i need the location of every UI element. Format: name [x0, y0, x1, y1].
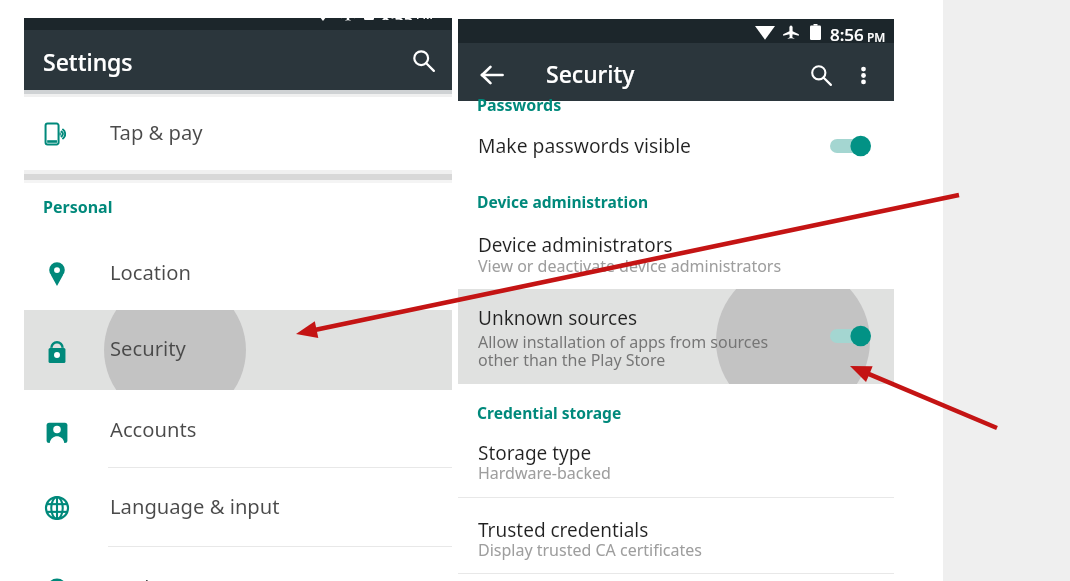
button[interactable]: Unknown sources: [458, 289, 894, 384]
staticText: 8:56: [830, 23, 864, 43]
staticText: Security: [110, 334, 186, 362]
staticText: 8:55: [381, 18, 413, 20]
button[interactable]: More options: [844, 56, 882, 94]
button[interactable]: Accounts: [24, 409, 452, 453]
staticText: Display trusted CA certificates: [478, 539, 702, 561]
staticText: Passwords: [477, 94, 562, 116]
button[interactable]: Tap & pay: [24, 112, 452, 156]
staticText: Accounts: [110, 415, 197, 443]
staticText: Credential storage: [477, 402, 622, 423]
staticText: PM: [867, 29, 886, 43]
button[interactable]: Trusted credentials: [458, 514, 894, 574]
staticText: Device administration: [477, 191, 649, 212]
staticText: View or deactivate device administrators: [478, 255, 782, 277]
staticText: Hardware-backed: [478, 462, 611, 484]
staticText: Location: [110, 258, 191, 286]
button[interactable]: Security: [24, 310, 452, 390]
staticText: Unknown sources: [478, 305, 637, 331]
button[interactable]: Search: [402, 39, 444, 81]
button[interactable]: Back: [473, 56, 511, 94]
button[interactable]: Make passwords visible: [458, 123, 894, 169]
staticText: Settings: [43, 46, 133, 77]
staticText: Make passwords visible: [478, 132, 691, 158]
button[interactable]: Location: [24, 252, 452, 296]
staticText: Storage type: [478, 440, 592, 466]
staticText: Trusted credentials: [478, 517, 649, 543]
button[interactable]: Storage type: [458, 437, 894, 497]
staticText: Personal: [43, 196, 113, 218]
staticText: Backup & reset: [110, 573, 253, 581]
staticText: PM: [416, 18, 433, 19]
button[interactable]: Backup & reset: [24, 567, 452, 581]
button[interactable]: Device administrators: [458, 229, 894, 291]
button[interactable]: Search: [802, 56, 840, 94]
staticText: Language & input: [110, 492, 280, 520]
button[interactable]: Language & input: [24, 486, 452, 530]
staticText: Device administrators: [478, 232, 673, 258]
staticText: Security: [546, 58, 635, 89]
staticText: other than the Play Store: [478, 349, 666, 371]
staticText: Tap & pay: [110, 118, 203, 146]
staticText: Allow installation of apps from sources: [478, 331, 769, 353]
